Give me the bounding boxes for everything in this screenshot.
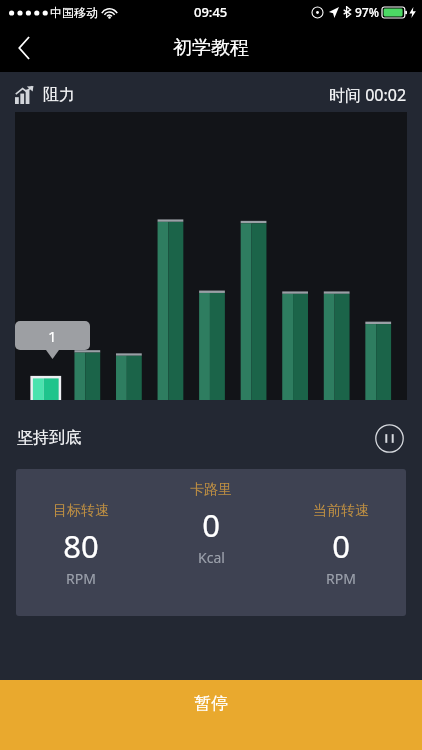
staticText: 时间 00:02 <box>329 84 407 106</box>
staticText: 坚持到底 <box>17 428 81 448</box>
staticText: 暂停 <box>194 693 228 714</box>
staticText: 0 <box>332 525 350 567</box>
button[interactable]: 目标转速 <box>16 469 146 616</box>
staticText: 0 <box>202 504 220 546</box>
staticText: 卡路里 <box>190 481 232 499</box>
staticText: 目标转速 <box>53 502 109 520</box>
staticText: Kcal <box>198 548 225 567</box>
button[interactable]: Back <box>0 24 48 72</box>
staticText: 09:45 <box>194 3 228 21</box>
staticText: 80 <box>63 525 99 567</box>
staticText: 97% <box>355 4 379 20</box>
button[interactable]: 当前转速 <box>276 469 406 616</box>
button[interactable]: 暂停 <box>0 680 422 750</box>
staticText: 初学教程 <box>173 36 249 60</box>
staticText: RPM <box>66 569 96 588</box>
staticText: 当前转速 <box>313 502 369 520</box>
button[interactable]: 卡路里 <box>146 469 276 616</box>
staticText: 阻力 <box>43 85 75 105</box>
staticText: 1 <box>48 326 57 346</box>
staticText: RPM <box>326 569 356 588</box>
staticText: 中国移动 <box>50 5 98 20</box>
button[interactable]: Pause <box>373 422 405 454</box>
